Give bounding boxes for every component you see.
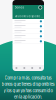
staticText: y los que ya has consumido [3, 88, 52, 93]
staticText: Mis bonos disponibles [14, 15, 42, 18]
staticText: Compra más, consulta tus [4, 75, 51, 80]
staticText: Bonos [14, 6, 24, 9]
staticText: en la aplicación. [14, 95, 42, 100]
staticText: bonos que tienes disponibles [1, 82, 54, 87]
